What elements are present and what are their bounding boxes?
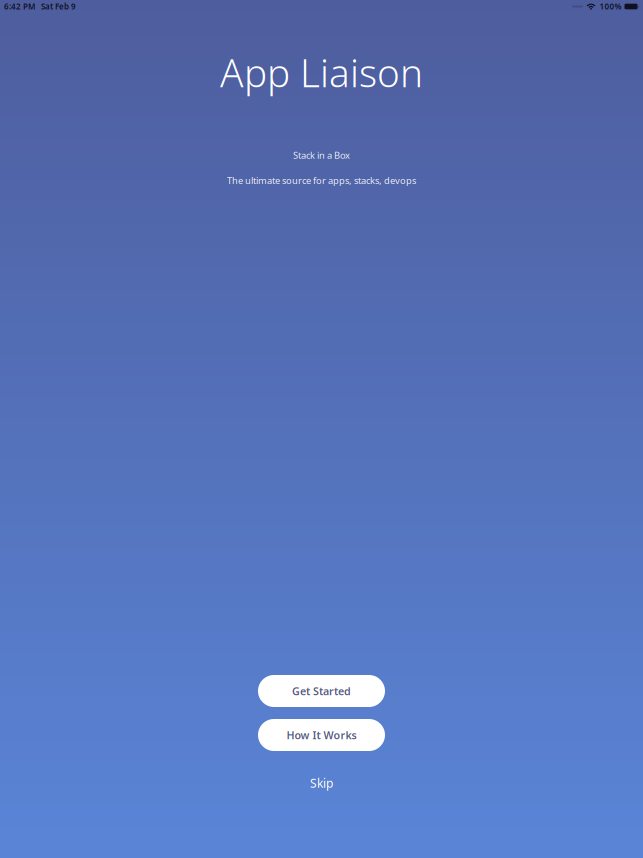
staticText: The ultimate source for apps, stacks, de… bbox=[227, 174, 416, 187]
button[interactable]: How It Works bbox=[258, 719, 385, 751]
button[interactable]: Skip bbox=[291, 772, 351, 794]
staticText: 100% bbox=[599, 1, 621, 12]
staticText: 6:42 PM bbox=[4, 1, 35, 12]
staticText: Get Started bbox=[292, 684, 351, 698]
button[interactable]: Get Started bbox=[258, 675, 385, 707]
staticText: Stack in a Box bbox=[293, 149, 350, 161]
staticText: App Liaison bbox=[220, 46, 423, 98]
staticText: How It Works bbox=[286, 728, 356, 742]
staticText: Skip bbox=[310, 775, 333, 791]
staticText: Sat Feb 9 bbox=[41, 1, 76, 12]
